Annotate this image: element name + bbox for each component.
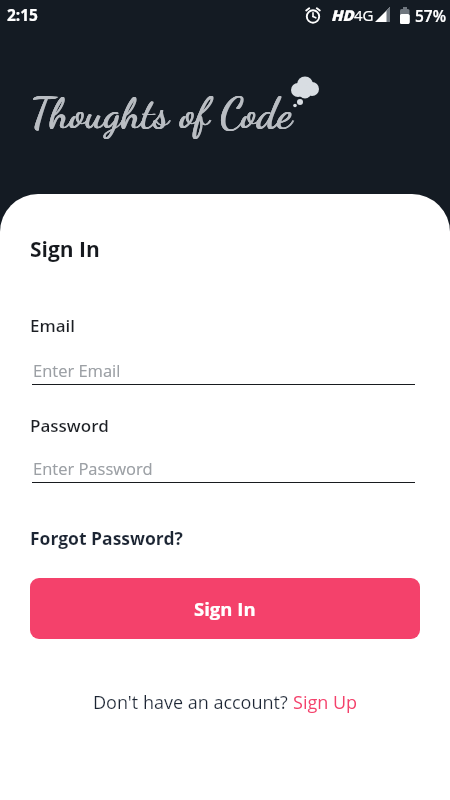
staticText: Email xyxy=(30,314,76,337)
staticText: Enter Email xyxy=(33,359,121,381)
staticText: Don't have an account? xyxy=(93,690,293,715)
staticText: Password xyxy=(30,414,109,437)
staticText: 57% xyxy=(415,5,447,26)
staticText: Sign In xyxy=(30,235,100,264)
staticText: Thoughts of Code xyxy=(30,87,292,139)
staticText: 4G xyxy=(354,5,374,25)
button[interactable]: Sign Up xyxy=(293,690,358,715)
staticText: Thoughts of Code xyxy=(30,87,292,139)
staticText: Forgot Password? xyxy=(30,526,183,550)
staticText: HD xyxy=(331,5,354,25)
button[interactable]: Enter Password xyxy=(32,452,415,483)
staticText: Thoughts of Code xyxy=(31,87,293,139)
button[interactable]: Enter Email xyxy=(32,354,415,385)
button[interactable]: Forgot Password? xyxy=(29,524,182,548)
staticText: Sign Up xyxy=(293,690,358,715)
button[interactable]: Sign In xyxy=(30,578,420,639)
staticText: 2:15 xyxy=(7,4,38,25)
staticText: Sign In xyxy=(194,596,256,621)
staticText: Enter Password xyxy=(33,457,153,479)
